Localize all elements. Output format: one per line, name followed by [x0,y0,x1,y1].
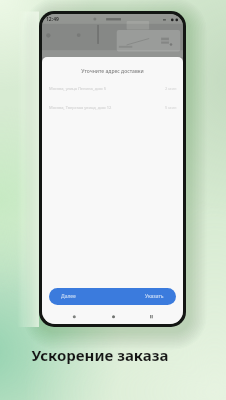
staticText: 5 мин [165,105,177,110]
staticText: Указать [145,293,164,300]
button[interactable]: Back [68,310,80,322]
button[interactable]: Москва, улица Ленина, дом 5 [49,86,177,91]
staticText: Москва, улица Ленина, дом 5 [49,86,165,91]
button[interactable]: Далее [49,288,176,305]
staticText: 12:49 [46,16,59,23]
button[interactable]: Home [107,310,119,322]
staticText: Далее [61,293,76,300]
button[interactable]: Recents [145,310,157,322]
staticText: 2 мин [165,86,177,91]
button[interactable]: Москва, Тверская улица, дом 12 [49,105,177,110]
staticText: Москва, Тверская улица, дом 12 [49,105,165,110]
staticText: Уточните адрес доставки [42,68,183,75]
staticText: Ускорение заказа [0,345,213,365]
